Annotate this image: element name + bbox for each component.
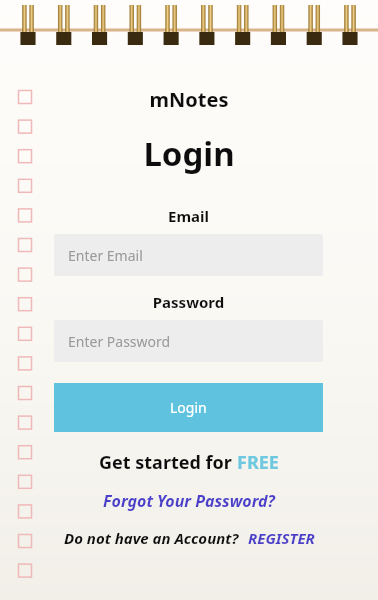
staticText: Password — [54, 292, 323, 312]
staticText: Forgot Your Password? — [103, 490, 275, 512]
staticText: Enter Email — [68, 246, 143, 265]
staticText: Enter Password — [68, 332, 171, 351]
staticText: FREE — [237, 450, 279, 475]
other: Notebook spiral binding — [0, 0, 378, 52]
staticText: Login — [170, 398, 207, 417]
staticText: Email — [54, 206, 323, 226]
button[interactable]: REGISTER — [248, 528, 315, 548]
button[interactable]: Enter Password — [54, 320, 323, 362]
staticText: Login — [0, 131, 378, 176]
staticText: mNotes — [0, 86, 378, 113]
button[interactable]: Get started for — [0, 450, 378, 475]
staticText: REGISTER — [248, 528, 315, 548]
staticText: Get started for — [99, 450, 237, 475]
button[interactable]: Login — [54, 383, 323, 432]
button[interactable]: Forgot Your Password? — [0, 490, 378, 512]
button[interactable]: Enter Email — [54, 234, 323, 276]
staticText: Do not have an Account? — [64, 528, 239, 548]
